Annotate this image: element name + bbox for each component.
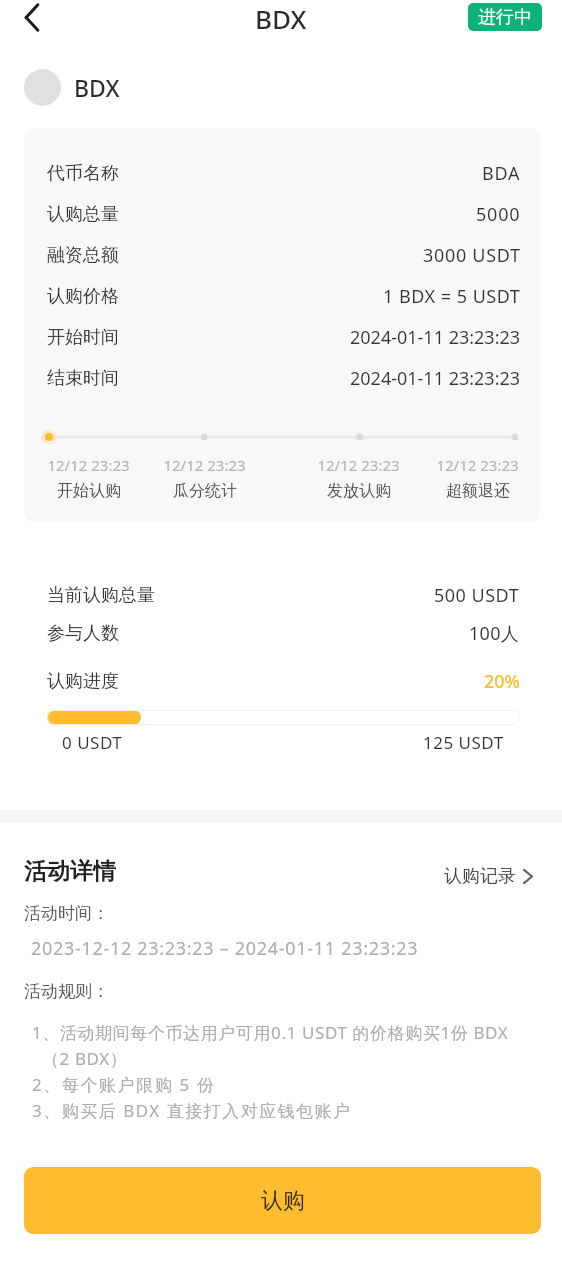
button[interactable]: 认购记录 xyxy=(444,865,533,888)
staticText: 参与人数 xyxy=(47,622,119,645)
staticText: 进行中 xyxy=(478,6,532,29)
staticText: 100人 xyxy=(469,621,520,646)
staticText: 3000 USDT xyxy=(423,243,521,268)
staticText: 20% xyxy=(484,669,520,694)
staticText: 活动时间： xyxy=(24,903,109,924)
staticText: 12/12 23:23 xyxy=(317,455,400,475)
staticText: 0 USDT xyxy=(62,731,123,754)
staticText: 2024-01-11 23:23:23 xyxy=(350,366,521,391)
staticText: 认购进度 xyxy=(47,670,119,693)
staticText: 开始认购 xyxy=(57,481,121,500)
staticText: 12/12 23:23 xyxy=(47,455,130,475)
staticText: 融资总额 xyxy=(47,244,119,267)
staticText: BDA xyxy=(482,161,521,186)
staticText: 结束时间 xyxy=(47,367,119,390)
staticText: BDX xyxy=(74,72,120,103)
button[interactable]: 进行中 xyxy=(468,3,542,31)
staticText: 认购价格 xyxy=(47,285,119,308)
staticText: BDX xyxy=(255,1,307,36)
staticText: （2 BDX） xyxy=(42,1047,128,1070)
staticText: 12/12 23:23 xyxy=(436,455,519,475)
staticText: 认购总量 xyxy=(47,203,119,226)
staticText: 代币名称 xyxy=(47,162,119,185)
staticText: 认购记录 xyxy=(444,865,516,888)
staticText: 发放认购 xyxy=(327,481,391,500)
staticText: 瓜分统计 xyxy=(173,481,237,500)
staticText: 开始时间 xyxy=(47,326,119,349)
staticText: 3、购买后 BDX 直接打入对应钱包账户 xyxy=(32,1099,352,1122)
staticText: 125 USDT xyxy=(423,731,504,754)
staticText: 1 BDX = 5 USDT xyxy=(383,284,521,309)
staticText: 超额退还 xyxy=(446,481,510,500)
staticText: 2、每个账户限购 5 份 xyxy=(32,1073,216,1096)
staticText: 5000 xyxy=(476,202,521,227)
staticText: 2024-01-11 23:23:23 xyxy=(350,325,521,350)
staticText: 当前认购总量 xyxy=(47,584,155,607)
button[interactable]: 认购 xyxy=(24,1167,541,1234)
staticText: 活动详情 xyxy=(24,857,116,886)
button[interactable]: Back xyxy=(11,0,53,37)
staticText: 活动规则： xyxy=(24,981,109,1002)
staticText: 500 USDT xyxy=(434,583,520,608)
staticText: 12/12 23:23 xyxy=(163,455,246,475)
staticText: 认购 xyxy=(261,1187,305,1215)
staticText: 2023-12-12 23:23:23 – 2024-01-11 23:23:2… xyxy=(31,936,419,961)
staticText: 1、活动期间每个币达用户可用0.1 USDT 的价格购买1份 BDX xyxy=(32,1021,509,1044)
